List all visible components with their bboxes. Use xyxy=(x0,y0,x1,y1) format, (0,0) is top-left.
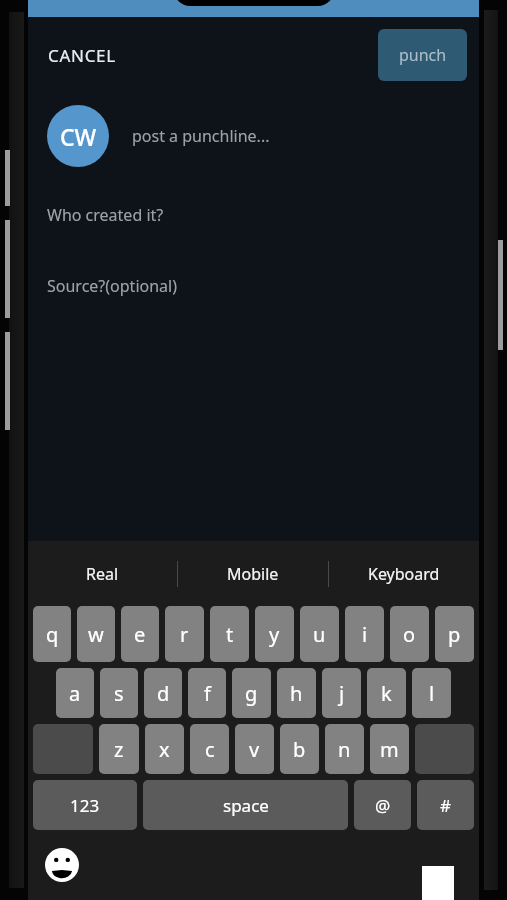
button[interactable]: v xyxy=(235,724,274,774)
button[interactable]: q xyxy=(33,606,71,662)
button[interactable]: Shift xyxy=(33,724,93,774)
button[interactable]: Source?(optional) xyxy=(28,250,479,321)
button[interactable]: s xyxy=(100,668,138,718)
staticText: o xyxy=(403,621,416,648)
button[interactable]: k xyxy=(367,668,406,718)
staticText: e xyxy=(134,621,146,648)
staticText: u xyxy=(313,621,326,648)
staticText: l xyxy=(429,680,435,707)
button[interactable]: Backspace xyxy=(415,724,474,774)
staticText: r xyxy=(180,621,189,648)
staticText: f xyxy=(204,680,211,707)
button[interactable]: b xyxy=(280,724,319,774)
button[interactable]: a xyxy=(56,668,94,718)
staticText: s xyxy=(114,680,124,707)
button[interactable]: c xyxy=(190,724,229,774)
staticText: @ xyxy=(375,794,391,817)
button[interactable]: u xyxy=(300,606,339,662)
button[interactable]: h xyxy=(277,668,316,718)
staticText: Keyboard xyxy=(368,563,440,585)
button[interactable]: Emoji xyxy=(40,843,84,887)
button[interactable]: l xyxy=(412,668,451,718)
button[interactable]: @ xyxy=(354,780,411,830)
staticText: d xyxy=(157,680,170,707)
staticText: a xyxy=(69,680,81,707)
button[interactable]: Real xyxy=(28,541,177,606)
staticText: CW xyxy=(60,121,97,152)
staticText: w xyxy=(88,621,104,648)
staticText: n xyxy=(338,736,351,763)
staticText: m xyxy=(380,736,399,763)
staticText: post a punchline... xyxy=(132,125,270,147)
staticText: b xyxy=(293,736,306,763)
button[interactable]: Who created it? xyxy=(28,179,479,250)
button[interactable]: punch xyxy=(378,29,467,81)
button[interactable]: o xyxy=(390,606,429,662)
button[interactable]: j xyxy=(322,668,361,718)
button[interactable]: t xyxy=(210,606,249,662)
button[interactable]: post a punchline... xyxy=(132,93,479,179)
staticText: k xyxy=(381,680,392,707)
button[interactable]: m xyxy=(370,724,409,774)
button[interactable]: e xyxy=(121,606,159,662)
staticText: i xyxy=(362,621,368,648)
staticText: t xyxy=(226,621,234,648)
staticText: CANCEL xyxy=(48,44,116,67)
button[interactable]: space xyxy=(143,780,348,830)
button[interactable]: CANCEL xyxy=(36,36,128,75)
staticText: j xyxy=(339,680,345,707)
staticText: c xyxy=(205,736,215,763)
staticText: Who created it? xyxy=(47,204,164,226)
staticText: g xyxy=(245,680,258,707)
staticText: p xyxy=(448,621,461,648)
staticText: punch xyxy=(399,44,447,66)
staticText: Mobile xyxy=(227,563,279,585)
button[interactable]: f xyxy=(188,668,226,718)
staticText: h xyxy=(290,680,303,707)
staticText: q xyxy=(46,621,59,648)
staticText: x xyxy=(159,736,170,763)
staticText: Source?(optional) xyxy=(47,275,177,297)
staticText: space xyxy=(223,794,269,817)
button[interactable]: Profile avatar CW xyxy=(47,105,109,167)
staticText: 123 xyxy=(70,794,100,817)
button[interactable]: y xyxy=(255,606,294,662)
button[interactable]: i xyxy=(345,606,384,662)
button[interactable]: Mobile xyxy=(178,541,328,606)
staticText: y xyxy=(269,621,280,648)
staticText: # xyxy=(440,794,451,817)
button[interactable]: n xyxy=(325,724,364,774)
button[interactable]: Keyboard xyxy=(329,541,479,606)
staticText: Real xyxy=(86,563,119,585)
staticText: z xyxy=(114,736,124,763)
button[interactable]: d xyxy=(144,668,182,718)
button[interactable]: w xyxy=(77,606,115,662)
button[interactable]: 123 xyxy=(33,780,137,830)
button[interactable]: z xyxy=(99,724,139,774)
button[interactable]: # xyxy=(417,780,474,830)
button[interactable]: p xyxy=(435,606,474,662)
button[interactable]: g xyxy=(232,668,271,718)
staticText: v xyxy=(249,736,260,763)
button[interactable]: x xyxy=(145,724,184,774)
button[interactable]: r xyxy=(165,606,204,662)
